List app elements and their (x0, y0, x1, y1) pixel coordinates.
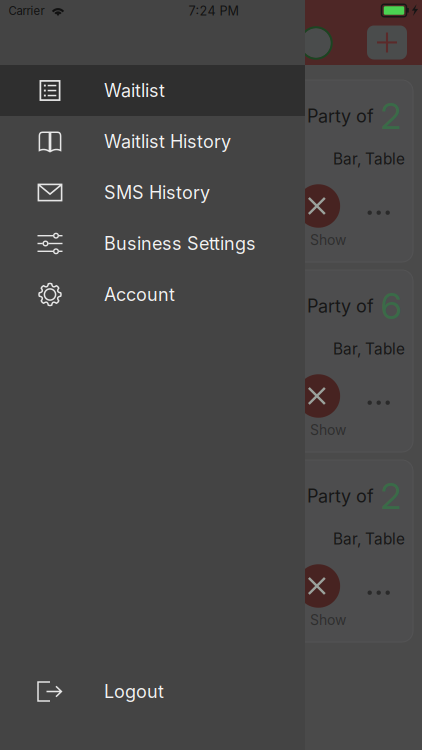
staticText: Bar, Table (333, 150, 405, 168)
button[interactable]: Remove party (297, 374, 340, 418)
staticText: Show (310, 421, 346, 438)
staticText: Show (310, 231, 346, 248)
button[interactable]: Logout (0, 666, 305, 717)
staticText: Waitlist History (104, 131, 231, 152)
staticText: Waitlist (104, 80, 165, 101)
staticText: Party of (307, 485, 374, 507)
staticText: Bar, Table (333, 340, 405, 358)
staticText: Business Settings (104, 233, 256, 254)
button[interactable]: Waitlist (0, 65, 305, 116)
staticText: 2 (380, 94, 401, 138)
button[interactable]: Add party (365, 23, 409, 61)
staticText: Party of (307, 105, 374, 127)
staticText: Show (310, 611, 346, 628)
button[interactable]: More options (357, 577, 401, 609)
button[interactable]: Business Settings (0, 218, 305, 269)
button[interactable]: More options (357, 387, 401, 419)
button[interactable]: Waitlist History (0, 116, 305, 167)
button[interactable]: More options (357, 197, 401, 229)
button[interactable]: Remove party (297, 184, 340, 228)
button[interactable]: Waiting count (300, 27, 332, 59)
staticText: 2 (380, 474, 401, 518)
staticText: 6 (380, 284, 401, 328)
staticText: Bar, Table (333, 530, 405, 548)
staticText: Carrier (8, 4, 44, 18)
button[interactable]: Account (0, 269, 305, 320)
staticText: 7:24 PM (188, 3, 238, 19)
staticText: SMS History (104, 182, 210, 203)
staticText: Party of (307, 295, 374, 317)
button[interactable]: Remove party (297, 564, 340, 608)
staticText: Logout (104, 681, 164, 702)
staticText: Account (104, 284, 175, 305)
button[interactable]: SMS History (0, 167, 305, 218)
